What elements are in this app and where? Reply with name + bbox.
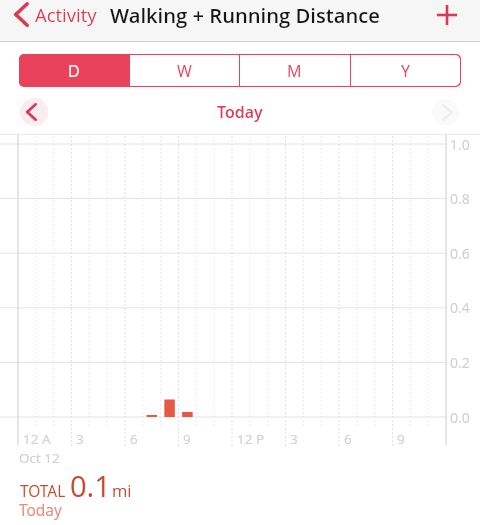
button[interactable]: Activity (9, 0, 103, 30)
staticText: 3 (290, 430, 298, 448)
button[interactable]: M (239, 54, 350, 87)
staticText: 12 P (237, 430, 265, 448)
staticText: Today (19, 499, 62, 520)
button[interactable]: D (19, 54, 129, 87)
staticText: 0.8 (450, 189, 470, 208)
staticText: Y (401, 60, 410, 82)
staticText: 0.1 (70, 466, 111, 505)
staticText: 6 (130, 430, 138, 448)
button[interactable]: Previous day (20, 98, 48, 126)
staticText: 6 (344, 430, 352, 448)
staticText: Walking + Running Distance (110, 1, 380, 29)
button[interactable]: Add data (427, 0, 467, 35)
staticText: 9 (397, 430, 405, 448)
staticText: 3 (76, 430, 84, 448)
staticText: Oct 12 (19, 449, 60, 467)
button[interactable]: W (129, 54, 239, 87)
staticText: W (177, 60, 192, 82)
button[interactable]: Next day (432, 99, 459, 126)
staticText: Today (217, 101, 263, 123)
staticText: 0.2 (450, 353, 470, 372)
staticText: D (68, 60, 80, 82)
button[interactable]: Y (350, 54, 461, 87)
staticText: mi (112, 479, 132, 501)
staticText: TOTAL (20, 480, 66, 501)
staticText: M (287, 60, 302, 82)
staticText: 12 A (23, 430, 51, 448)
staticText: Activity (35, 2, 97, 27)
staticText: 9 (183, 430, 191, 448)
staticText: 0.4 (450, 298, 470, 317)
staticText: 0.6 (450, 244, 470, 263)
staticText: 1.0 (450, 135, 470, 154)
staticText: 0.0 (450, 408, 470, 427)
